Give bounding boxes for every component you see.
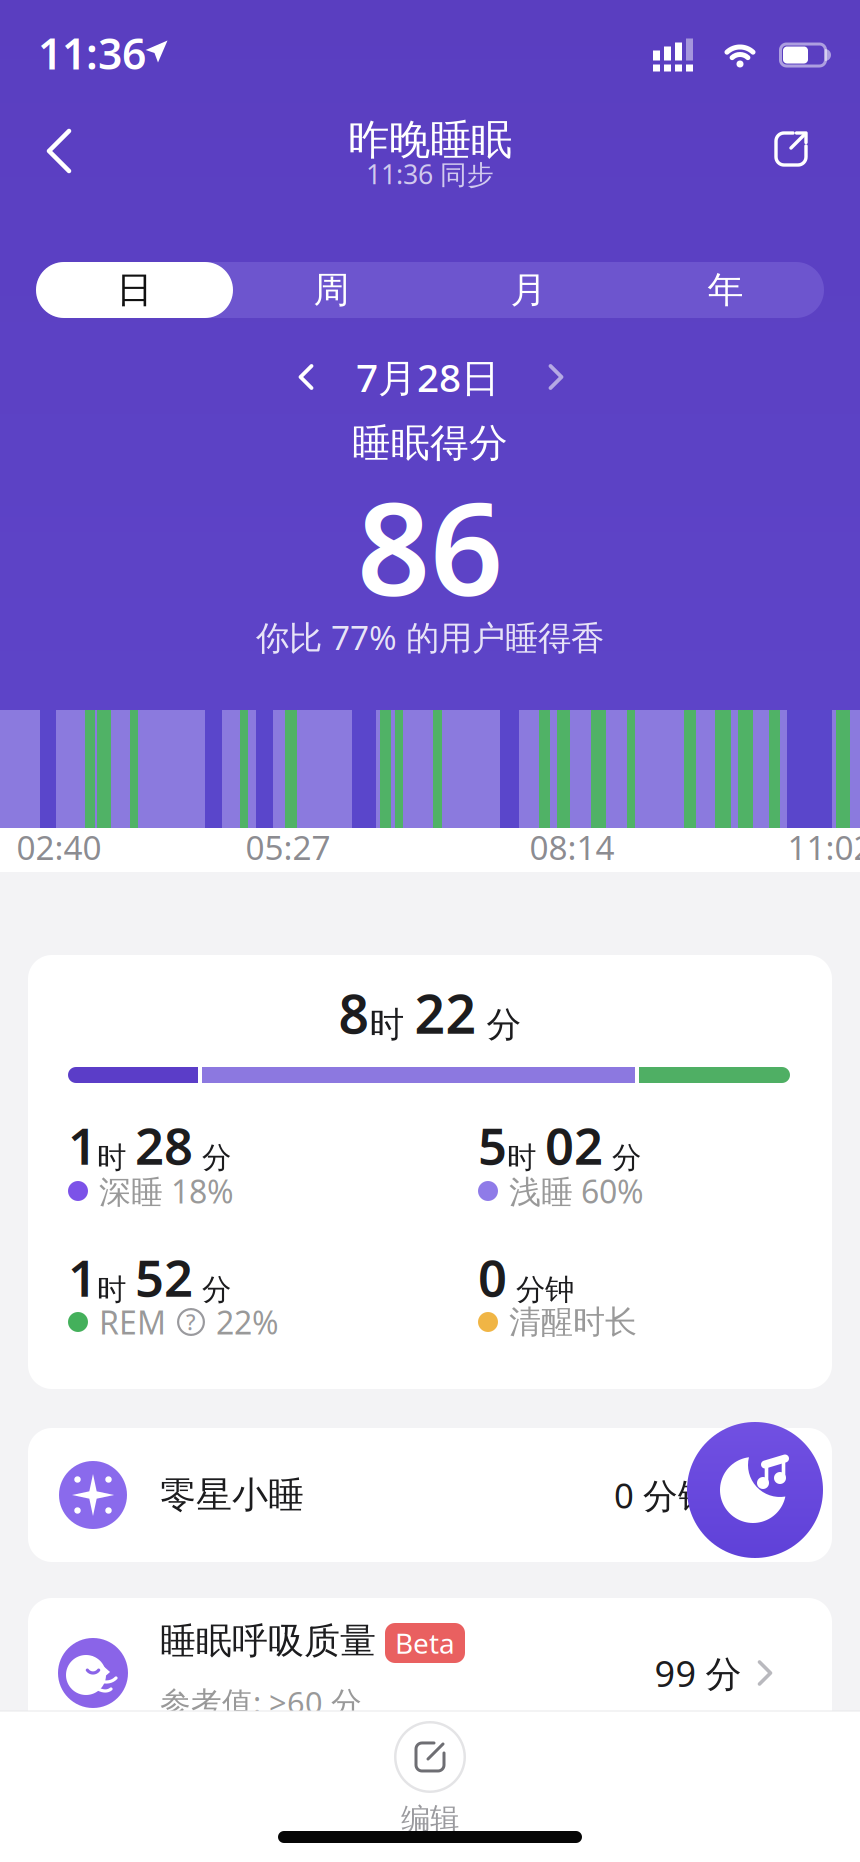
staticText: 0 分钟	[614, 1472, 713, 1518]
staticText: 清醒时长	[509, 1302, 637, 1342]
staticText: 8时 22 分	[338, 978, 521, 1048]
staticText: 年	[707, 268, 743, 312]
staticText: 日	[116, 268, 152, 312]
staticText: 99 分	[654, 1649, 741, 1697]
staticText: REM	[99, 1301, 166, 1343]
staticText: 睡眠呼吸质量	[160, 1619, 376, 1663]
staticText: 你比 77% 的用户睡得香	[256, 615, 604, 659]
button[interactable]: 日	[36, 262, 233, 318]
staticText: 11:36	[38, 25, 146, 81]
staticText: 11:02	[787, 825, 860, 869]
staticText: 1时 28 分	[68, 1111, 231, 1179]
staticText: 昨晚睡眠	[348, 115, 512, 165]
staticText: 08:14	[529, 825, 614, 869]
button[interactable]	[298, 364, 313, 390]
staticText: 02:40	[16, 825, 101, 869]
staticText: 11:36 同步	[366, 156, 494, 192]
button[interactable]: 月	[430, 262, 627, 318]
staticText: 周	[313, 268, 349, 312]
staticText: 1时 52 分	[68, 1243, 231, 1311]
staticText: 22%	[216, 1301, 279, 1343]
staticText: 05:27	[245, 825, 330, 869]
staticText: 深睡 18%	[99, 1170, 234, 1212]
staticText: 5时 02 分	[478, 1111, 641, 1179]
button[interactable]: 年	[627, 262, 824, 318]
button[interactable]	[548, 364, 563, 390]
staticText: Beta	[395, 1624, 455, 1662]
button[interactable]: 编辑	[394, 1721, 466, 1837]
staticText: 7月28日	[356, 351, 500, 403]
staticText: 零星小睡	[160, 1473, 304, 1517]
button[interactable]: 零星小睡	[28, 1428, 832, 1562]
button[interactable]	[45, 129, 75, 173]
button[interactable]: 睡眠呼吸质量	[28, 1598, 832, 1762]
staticText: 浅睡 60%	[509, 1170, 644, 1212]
button[interactable]: 周	[233, 262, 430, 318]
staticText: 86	[357, 461, 503, 631]
staticText: 编辑	[401, 1801, 459, 1837]
button[interactable]	[687, 1422, 823, 1558]
button[interactable]	[774, 131, 808, 167]
staticText: 参考值: >60 分	[160, 1682, 362, 1722]
staticText: 月	[510, 268, 546, 312]
staticText: ?	[186, 1308, 196, 1336]
staticText: 睡眠得分	[352, 419, 508, 467]
staticText: 0 分钟	[478, 1243, 574, 1311]
